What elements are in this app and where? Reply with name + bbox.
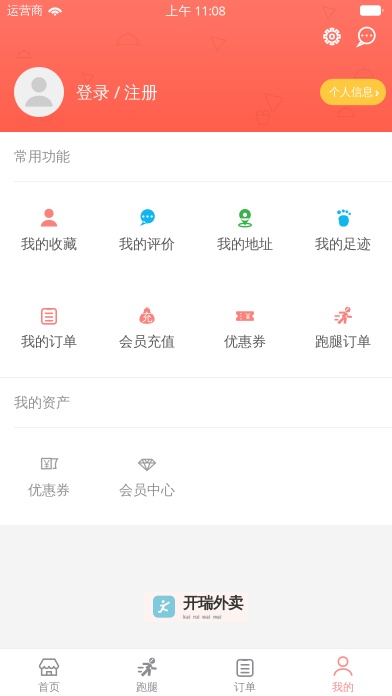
staticText: 首页 <box>38 680 60 694</box>
staticText: 我的评价 <box>119 235 175 253</box>
staticText: kai rui wai mai <box>183 614 221 620</box>
staticText: 我的足迹 <box>315 235 371 253</box>
button[interactable]: 登录 / 注册 <box>14 67 158 117</box>
staticText: 登录 / 注册 <box>76 81 158 103</box>
staticText: 上午 11:08 <box>165 2 225 19</box>
staticText: 运营商 <box>7 3 43 18</box>
button[interactable]: 我的收藏 <box>0 182 98 279</box>
staticText: 我的订单 <box>21 333 77 350</box>
button[interactable]: 订单 <box>196 649 294 696</box>
staticText: 订单 <box>234 680 256 694</box>
button[interactable]: 设置 <box>315 21 349 51</box>
staticText: 我的资产 <box>14 394 70 411</box>
staticText: 常用功能 <box>14 148 70 165</box>
staticText: 开瑞外卖 <box>183 593 243 613</box>
button[interactable]: 消息 <box>349 21 383 51</box>
staticText: 跑腿 <box>136 680 158 694</box>
button[interactable]: 跑腿 <box>98 649 196 696</box>
staticText: 跑腿订单 <box>315 333 371 350</box>
button[interactable]: 会员中心 <box>98 428 196 525</box>
button[interactable]: 优惠券 <box>196 279 294 377</box>
button[interactable]: 充 <box>98 279 196 377</box>
staticText: 我的地址 <box>217 235 273 253</box>
staticText: 个人信息 <box>329 85 373 99</box>
staticText: › <box>375 84 379 100</box>
staticText: 我的 <box>332 680 354 694</box>
button[interactable]: 我的评价 <box>98 182 196 279</box>
button[interactable]: 我的 <box>294 649 392 696</box>
staticText: 优惠券 <box>28 481 70 499</box>
button[interactable]: 我的地址 <box>196 182 294 279</box>
staticText: 我的收藏 <box>21 235 77 253</box>
staticText: 优惠券 <box>224 333 266 350</box>
button[interactable]: 个人信息 <box>320 79 386 105</box>
button[interactable]: 跑腿订单 <box>294 279 392 377</box>
button[interactable]: 首页 <box>0 649 98 696</box>
staticText: 会员充值 <box>119 333 175 350</box>
staticText: 会员中心 <box>119 481 175 499</box>
button[interactable]: 我的订单 <box>0 279 98 377</box>
button[interactable]: 我的足迹 <box>294 182 392 279</box>
staticText: ¥ <box>43 456 49 471</box>
button[interactable]: ¥ <box>0 428 98 525</box>
staticText: 充 <box>141 310 152 324</box>
